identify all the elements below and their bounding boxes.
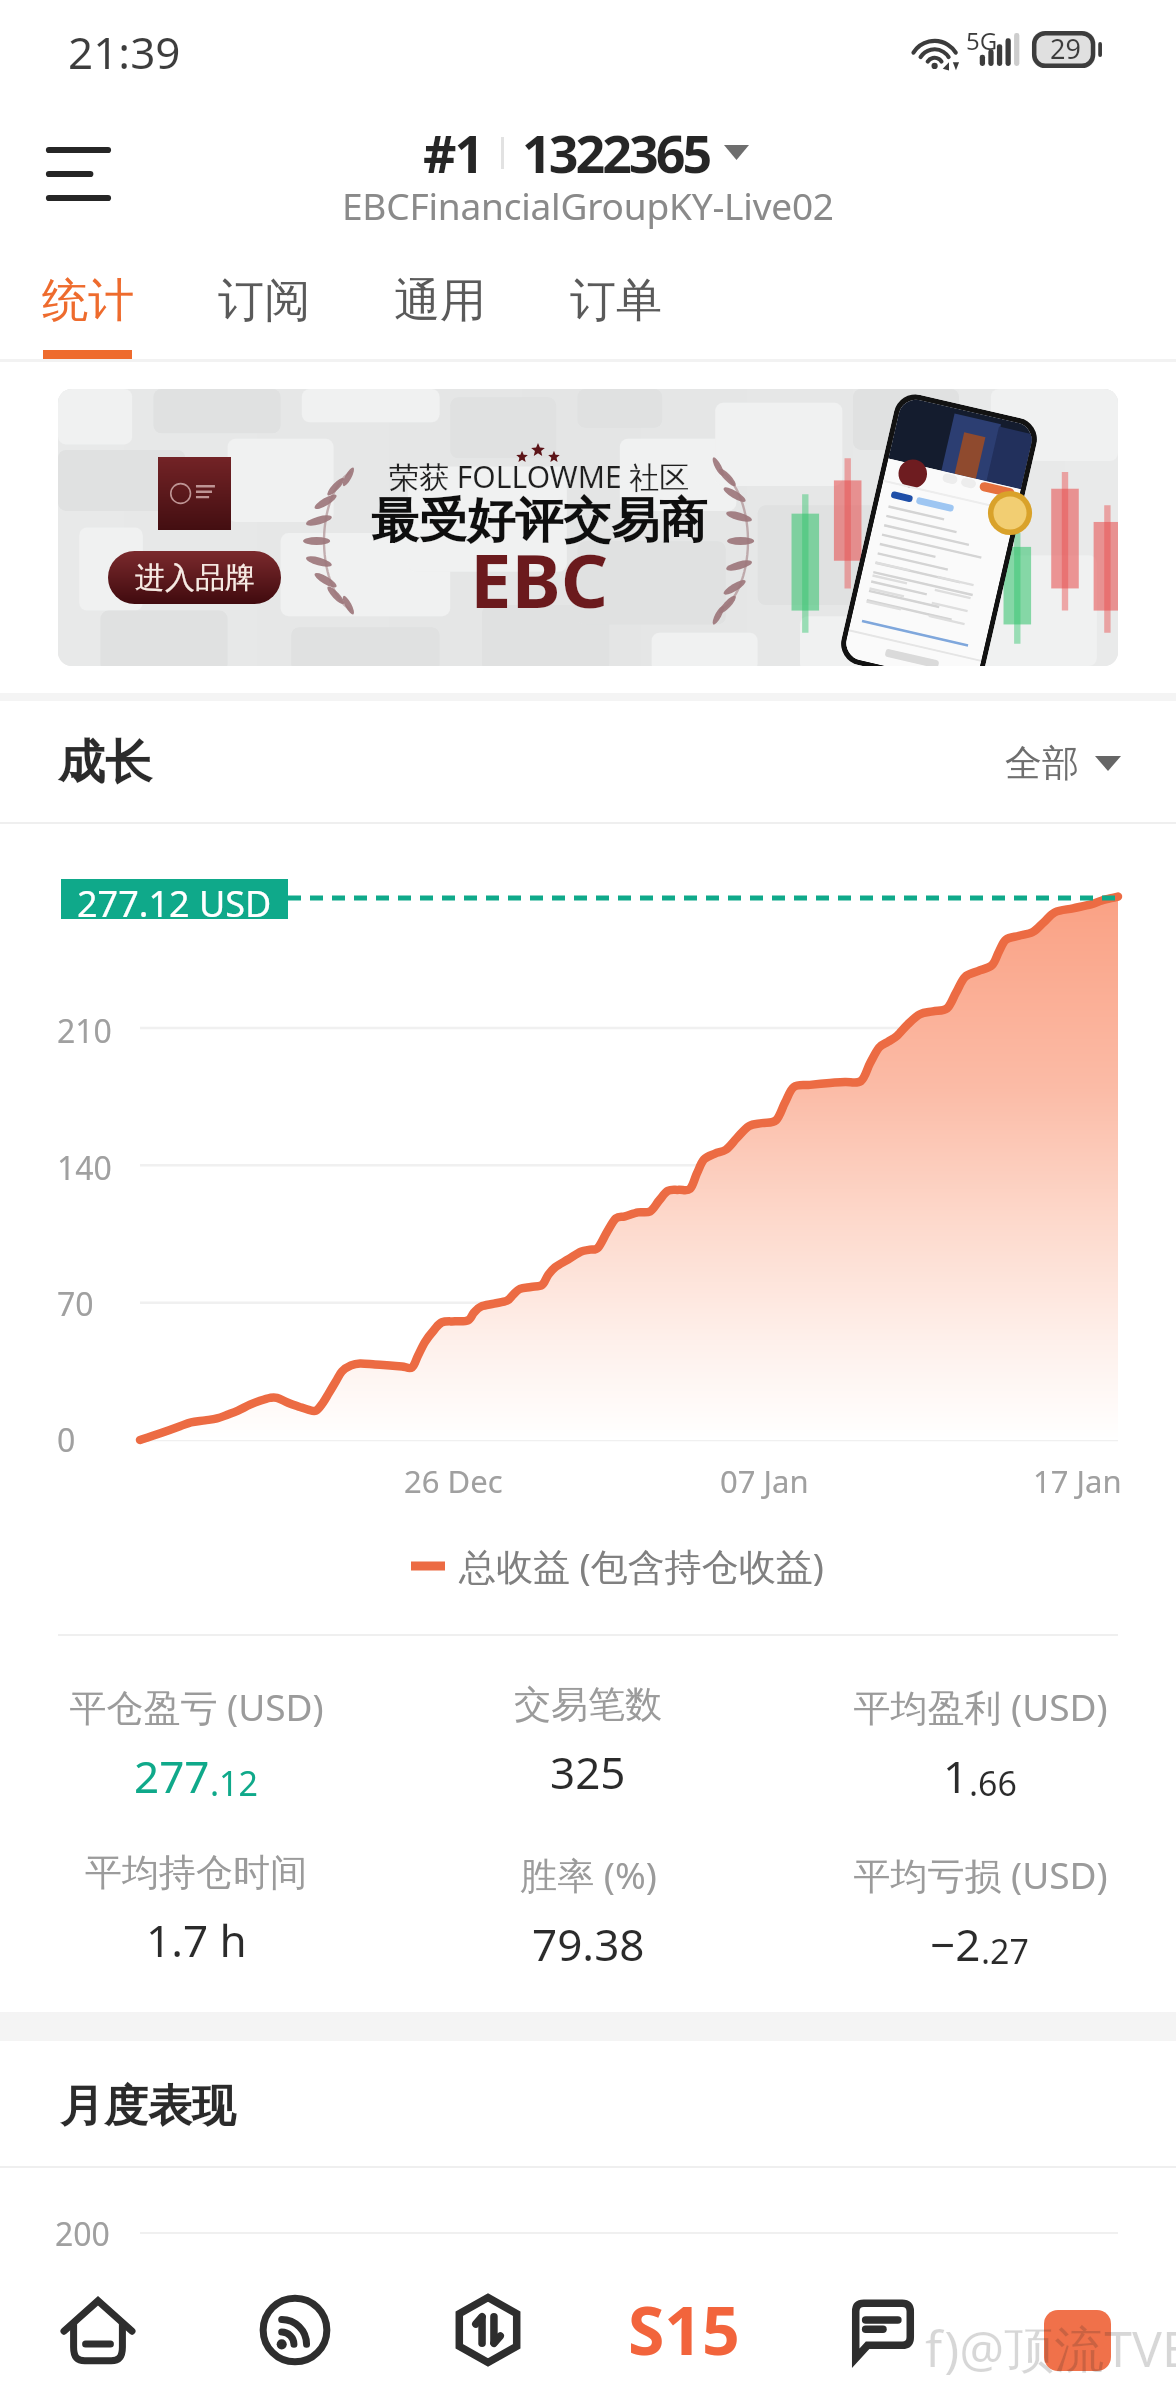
staticText: 21:39 — [68, 22, 181, 82]
staticText: 最受好评交易商 — [371, 491, 707, 551]
staticText: 26 Dec — [404, 1460, 503, 1502]
staticText: 70 — [57, 1282, 94, 1326]
staticText: EBCFinancialGroupKY-Live02 — [342, 180, 834, 230]
staticText: 29 — [1050, 30, 1081, 67]
button[interactable]: 通用 — [352, 266, 528, 358]
staticText: 0 — [57, 1418, 76, 1462]
staticText: 07 Jan — [720, 1460, 809, 1502]
button[interactable]: Trade — [390, 2255, 585, 2400]
button[interactable]: 统计 — [0, 266, 176, 358]
staticText: 平均持仓时间 — [85, 1849, 307, 1896]
button[interactable]: EBC promotion banner — [58, 389, 1118, 666]
staticText: #1 — [423, 117, 483, 188]
staticText: 1 — [943, 1746, 969, 1806]
staticText: S15 — [628, 2284, 740, 2374]
staticText: 平均亏损 (USD) — [853, 1849, 1108, 1900]
staticText: 平仓盈亏 (USD) — [69, 1681, 324, 1732]
staticText: .27 — [981, 1928, 1030, 1974]
staticText: 210 — [57, 1009, 112, 1053]
staticText: EBC — [470, 529, 609, 630]
button[interactable]: 订阅 — [176, 266, 352, 358]
staticText: 交易笔数 — [514, 1681, 662, 1728]
staticText: 总收益 (包含持仓收益) — [459, 1540, 824, 1591]
button[interactable]: S15 — [585, 2255, 780, 2400]
button[interactable]: Menu — [30, 125, 130, 225]
staticText: 统计 — [42, 272, 134, 330]
staticText: −2 — [930, 1914, 981, 1974]
button[interactable]: Messages — [780, 2255, 975, 2400]
staticText: .12 — [210, 1760, 259, 1806]
staticText: .66 — [969, 1760, 1018, 1806]
staticText: 325 — [550, 1742, 626, 1802]
staticText: 胜率 (%) — [520, 1849, 657, 1900]
staticText: 17 Jan — [1033, 1460, 1122, 1502]
staticText: 通用 — [394, 272, 486, 330]
staticText: 1322365 — [522, 117, 710, 188]
staticText: 140 — [57, 1146, 112, 1190]
staticText: 月度表现 — [60, 2079, 236, 2134]
staticText: 全部 — [1005, 740, 1079, 787]
staticText: 79.38 — [532, 1914, 645, 1974]
button[interactable]: Signals — [195, 2255, 390, 2400]
staticText: 订阅 — [218, 272, 310, 330]
staticText: 5G — [966, 24, 998, 57]
staticText: 荣获 FOLLOWME 社区 — [389, 456, 690, 497]
button[interactable]: 全部 — [1005, 740, 1121, 787]
staticText: 277.12 USD — [77, 879, 272, 919]
staticText: 成长 — [58, 733, 152, 792]
staticText: 进入品牌 — [135, 559, 255, 597]
staticText: 订单 — [570, 272, 662, 330]
button[interactable]: 订单 — [528, 266, 704, 358]
button[interactable]: Home — [0, 2255, 195, 2400]
staticText: 277 — [134, 1746, 210, 1806]
staticText: 200 — [55, 2212, 110, 2256]
staticText: 平均盈利 (USD) — [853, 1681, 1108, 1732]
button[interactable]: 进入品牌 — [108, 551, 281, 604]
staticText: f)@顶流TVB — [925, 2314, 1176, 2382]
staticText: 1.7 h — [146, 1910, 247, 1970]
